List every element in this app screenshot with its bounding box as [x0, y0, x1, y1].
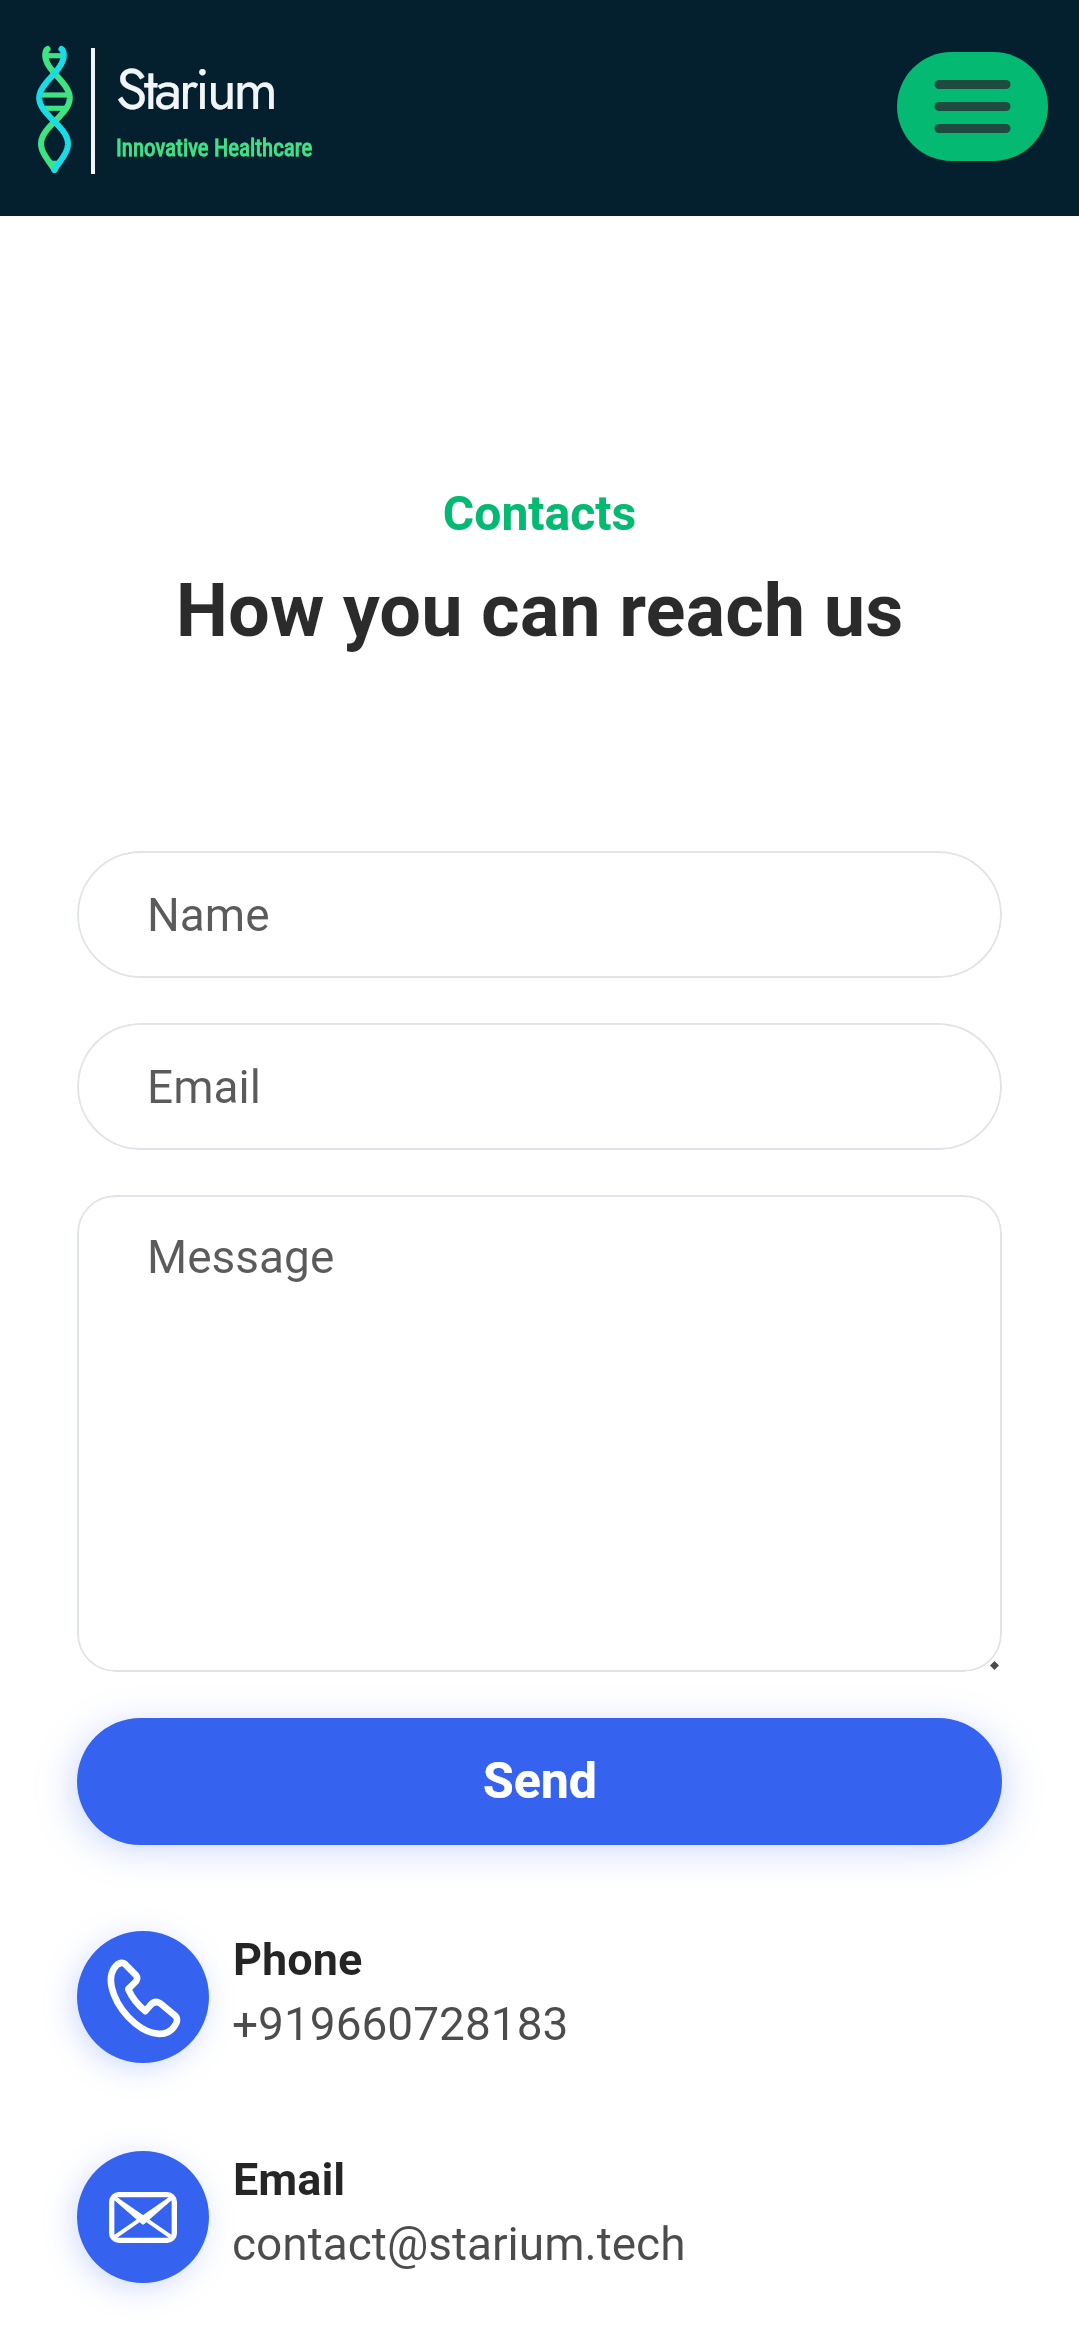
- button[interactable]: Send: [77, 1718, 1002, 1845]
- button[interactable]: Email: [77, 1023, 1002, 1150]
- staticText: Contacts: [0, 485, 1079, 541]
- staticText: How you can reach us: [0, 567, 1079, 654]
- staticText: Email: [147, 1060, 261, 1114]
- button[interactable]: Email: [77, 2151, 1002, 2283]
- button[interactable]: Phone: [77, 1931, 1002, 2063]
- button[interactable]: Name: [77, 851, 1002, 978]
- staticText: Message: [147, 1230, 335, 1284]
- button[interactable]: Open navigation menu: [897, 52, 1048, 161]
- button[interactable]: Message: [77, 1195, 1002, 1672]
- staticText: +919660728183: [232, 1997, 569, 2051]
- staticText: Starium: [116, 48, 275, 130]
- staticText: Innovative Healthcare: [116, 135, 313, 162]
- staticText: Name: [147, 888, 270, 942]
- staticText: Send: [483, 1752, 597, 1811]
- staticText: contact@starium.tech: [232, 2217, 686, 2271]
- staticText: Email: [233, 2153, 346, 2206]
- staticText: Phone: [233, 1933, 363, 1986]
